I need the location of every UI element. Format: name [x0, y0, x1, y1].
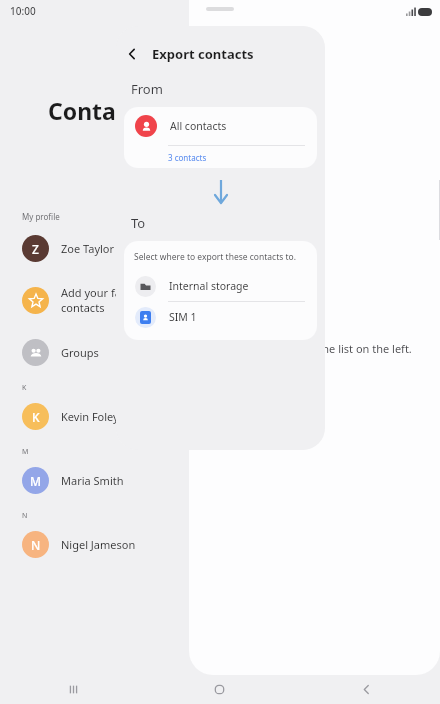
staticText: Add your favourite contacts	[61, 285, 158, 315]
staticText: N	[22, 511, 28, 521]
staticText: 3 contacts	[168, 152, 207, 163]
staticText: K	[32, 409, 40, 425]
staticText: All contacts	[170, 119, 227, 133]
button[interactable]: Groups	[0, 335, 200, 369]
staticText: N	[31, 537, 41, 553]
button[interactable]: K	[0, 399, 200, 433]
staticText: Select where to export these contacts to…	[134, 251, 297, 263]
staticText: Zoe Taylor	[61, 241, 115, 256]
staticText: M	[30, 473, 42, 489]
button[interactable]: SIM 1	[124, 302, 317, 332]
staticText: Maria Smith	[61, 473, 124, 488]
staticText: 10:00	[10, 4, 36, 18]
button[interactable]: N	[0, 527, 200, 561]
staticText: Contacts	[48, 95, 150, 126]
button[interactable]: All contacts	[124, 107, 317, 168]
staticText: Groups	[61, 345, 99, 360]
button[interactable]: M	[0, 463, 200, 497]
staticText: Export contacts	[152, 45, 254, 63]
button[interactable]: Back	[116, 38, 148, 70]
staticText: M	[22, 447, 29, 457]
staticText: K	[22, 383, 27, 393]
staticText: Internal storage	[169, 279, 249, 293]
staticText: Select a contact from the list on the le…	[207, 341, 412, 356]
button[interactable]: Add your favourite contacts	[0, 283, 200, 317]
button[interactable]: Recent apps	[0, 675, 146, 704]
button[interactable]: Internal storage	[124, 271, 317, 301]
button[interactable]: Back	[293, 675, 440, 704]
staticText: To	[131, 214, 146, 232]
staticText: Nigel Jameson	[61, 537, 136, 552]
staticText: From	[131, 80, 163, 98]
button[interactable]: Z	[0, 231, 200, 265]
staticText: Z	[32, 241, 39, 257]
staticText: My profile	[22, 211, 60, 222]
staticText: Kevin Foley	[61, 409, 119, 424]
staticText: SIM 1	[169, 310, 197, 324]
button[interactable]: Home	[146, 675, 293, 704]
